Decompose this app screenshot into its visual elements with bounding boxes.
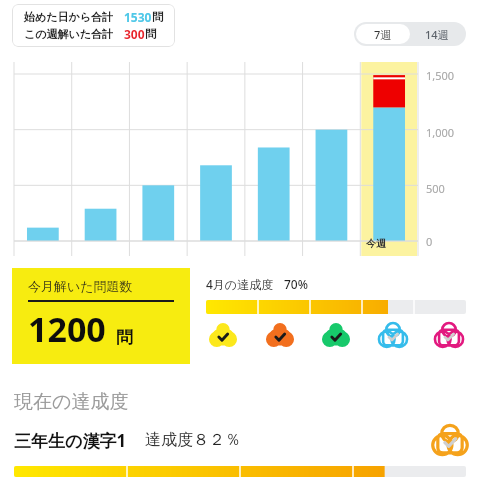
button[interactable]: Badge 5 <box>436 322 462 348</box>
staticText: 0 <box>426 234 433 249</box>
button[interactable] <box>206 300 466 314</box>
staticText: 300 <box>124 26 145 42</box>
staticText: 三年生の漢字1 <box>14 429 127 452</box>
button[interactable]: Achievement badge <box>434 424 466 456</box>
staticText: 問 <box>145 27 156 41</box>
button[interactable]: Badge 3 <box>323 322 349 348</box>
staticText: 問 <box>152 10 163 24</box>
staticText: 1,000 <box>426 125 455 140</box>
staticText: 1,500 <box>426 68 455 83</box>
staticText: 現在の達成度 <box>14 390 129 414</box>
button[interactable]: Badge 2 <box>267 322 293 348</box>
staticText: この週解いた合計 <box>24 27 114 41</box>
staticText: 70% <box>284 276 308 292</box>
staticText: 1200 <box>28 306 106 352</box>
staticText: 500 <box>426 181 445 196</box>
button[interactable]: 7週 <box>356 24 410 44</box>
button[interactable]: 今月解いた問題数 <box>12 268 190 364</box>
button[interactable]: Badge 4 <box>380 322 406 348</box>
staticText: 14週 <box>425 27 449 42</box>
staticText: 達成度８２％ <box>145 430 241 450</box>
staticText: 始めた日から合計 <box>24 10 114 24</box>
button[interactable]: Badge 1 <box>210 322 236 348</box>
staticText: 今月解いた問題数 <box>28 278 133 294</box>
button[interactable] <box>14 466 466 477</box>
button[interactable]: 14週 <box>410 24 464 44</box>
staticText: 7週 <box>374 27 392 42</box>
button[interactable]: 始めた日から合計 <box>12 4 175 47</box>
staticText: 1530 <box>124 9 152 25</box>
staticText: 4月の達成度 <box>206 276 274 292</box>
staticText: 今週 <box>366 237 386 250</box>
staticText: 問 <box>116 327 133 348</box>
